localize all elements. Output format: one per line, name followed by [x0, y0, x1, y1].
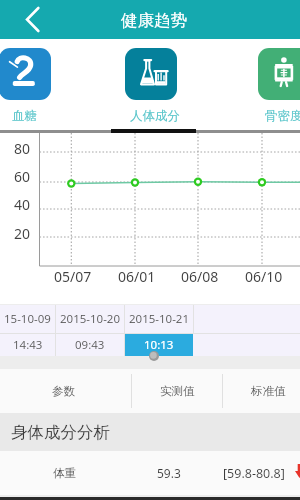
- staticText: 06/08: [181, 267, 219, 286]
- staticText: 60: [14, 167, 31, 185]
- button[interactable]: 参数: [0, 369, 126, 413]
- staticText: 59.3: [157, 465, 181, 481]
- staticText: 健康趋势: [121, 10, 187, 31]
- staticText: 参数: [52, 384, 75, 398]
- staticText: 标准值: [251, 384, 286, 398]
- staticText: 2015-10-20: [60, 311, 121, 327]
- button[interactable]: 2015-10-20: [56, 305, 124, 333]
- button[interactable]: 体重: [0, 451, 300, 495]
- staticText: 15-10-09: [4, 311, 51, 327]
- staticText: 20: [14, 224, 31, 242]
- button[interactable]: Back: [8, 0, 56, 39]
- staticText: [59.8-80.8]: [223, 465, 285, 482]
- button[interactable]: 血糖: [0, 48, 51, 100]
- staticText: 实测值: [160, 384, 195, 398]
- button[interactable]: 15-10-09: [0, 305, 55, 333]
- button[interactable]: 实测值: [132, 369, 223, 413]
- button[interactable]: 标准值: [223, 369, 300, 413]
- staticText: 2015-10-21: [129, 311, 190, 327]
- staticText: 40: [14, 195, 31, 213]
- staticText: 80: [14, 139, 31, 157]
- staticText: 14:43: [13, 337, 43, 353]
- button[interactable]: 09:43: [56, 334, 124, 356]
- staticText: 骨密度: [265, 108, 300, 124]
- staticText: 06/01: [118, 267, 156, 286]
- button[interactable]: 14:43: [0, 334, 55, 356]
- staticText: 人体成分: [130, 108, 180, 124]
- staticText: 血糖: [12, 108, 37, 124]
- staticText: 身体成分分析: [11, 422, 110, 443]
- button[interactable]: 2015-10-21: [125, 305, 193, 333]
- staticText: 10:13: [144, 337, 174, 353]
- staticText: 体重: [53, 466, 76, 480]
- staticText: 05/07: [54, 267, 92, 286]
- staticText: 09:43: [75, 337, 105, 353]
- button[interactable]: 人体成分: [125, 48, 177, 100]
- button[interactable]: 10:13: [125, 334, 193, 356]
- staticText: 06/10: [245, 267, 283, 286]
- button[interactable]: 骨密度: [258, 48, 300, 100]
